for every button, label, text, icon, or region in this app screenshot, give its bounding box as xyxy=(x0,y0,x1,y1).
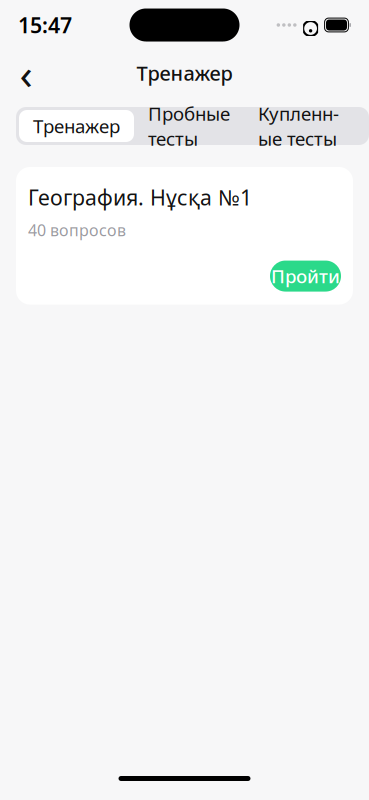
staticText: ‹ xyxy=(19,45,32,101)
button[interactable]: Пробные тесты xyxy=(134,110,244,142)
button[interactable]: Back xyxy=(4,51,48,95)
staticText: Купленные тесты xyxy=(258,101,339,151)
button[interactable]: Пройти xyxy=(270,261,341,292)
button[interactable]: Тренажер xyxy=(19,110,134,142)
staticText: Тренажер xyxy=(136,60,232,86)
staticText: География. Нұсқа №1 xyxy=(28,183,252,211)
staticText: Пробные тесты xyxy=(148,101,230,151)
button[interactable]: Купленные тесты xyxy=(244,110,353,142)
staticText: Пройти xyxy=(271,264,340,288)
staticText: 15:47 xyxy=(18,11,72,39)
staticText: 40 вопросов xyxy=(28,219,126,240)
staticText: Тренажер xyxy=(33,114,120,138)
